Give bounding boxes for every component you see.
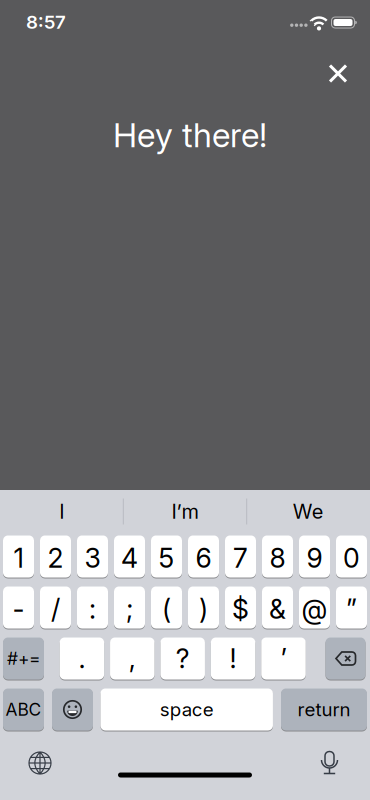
button[interactable]: . [60, 637, 104, 680]
staticText: space [160, 698, 214, 720]
staticText: 4 [121, 542, 138, 574]
button[interactable]: 6 [188, 535, 219, 578]
button[interactable]: #+= [3, 637, 44, 680]
button[interactable]: ABC [3, 688, 44, 731]
button[interactable]: 5 [151, 535, 182, 578]
button[interactable]: ; [114, 586, 145, 629]
button[interactable]: 9 [299, 535, 330, 578]
button[interactable]: I [1, 490, 123, 533]
button[interactable]: $ [225, 586, 256, 629]
staticText: ( [162, 593, 171, 625]
staticText: ? [176, 643, 190, 674]
button[interactable]: ” [336, 586, 367, 629]
staticText: ” [346, 593, 357, 625]
staticText: ’ [280, 643, 286, 674]
staticText: 6 [195, 542, 211, 574]
button[interactable]: - [3, 586, 34, 629]
staticText: & [269, 593, 286, 625]
staticText: / [51, 593, 60, 625]
staticText: 9 [306, 542, 322, 574]
button[interactable]: ? [160, 637, 205, 680]
staticText: ; [126, 593, 133, 625]
staticText: - [12, 593, 24, 625]
staticText: Hey there! [113, 115, 267, 155]
button[interactable]: ’ [261, 637, 306, 680]
button[interactable]: Next keyboard [18, 741, 62, 785]
button[interactable]: 7 [225, 535, 256, 578]
button[interactable]: ) [188, 586, 219, 629]
button[interactable]: @ [299, 586, 330, 629]
staticText: 2 [47, 542, 63, 574]
staticText: 1 [13, 542, 23, 574]
button[interactable]: 3 [77, 535, 108, 578]
staticText: 3 [84, 542, 100, 574]
staticText: We [293, 500, 324, 523]
button[interactable]: 2 [40, 535, 71, 578]
staticText: : [89, 593, 96, 625]
button[interactable]: return [281, 688, 367, 731]
button[interactable]: 8 [262, 535, 293, 578]
staticText: , [129, 643, 136, 674]
staticText: @ [301, 593, 327, 625]
staticText: ABC [5, 699, 41, 720]
staticText: ! [230, 643, 237, 674]
staticText: I’m [171, 500, 198, 523]
button[interactable]: & [262, 586, 293, 629]
button[interactable]: Emoji [52, 688, 93, 731]
staticText: I [59, 500, 64, 523]
staticText: $ [232, 593, 249, 625]
staticText: 8:57 [26, 11, 66, 33]
staticText: ) [199, 593, 208, 625]
button[interactable]: Delete [325, 637, 365, 680]
button[interactable]: space [100, 688, 273, 731]
staticText: 8 [269, 542, 285, 574]
button[interactable]: Close [316, 51, 360, 95]
button[interactable]: ( [151, 586, 182, 629]
button[interactable]: ! [211, 637, 255, 680]
button[interactable]: 1 [3, 535, 34, 578]
button[interactable]: I’m [124, 490, 246, 533]
button[interactable]: 4 [114, 535, 145, 578]
button[interactable]: Dictation [307, 741, 351, 785]
staticText: 5 [158, 542, 174, 574]
button[interactable]: : [77, 586, 108, 629]
button[interactable]: / [40, 586, 71, 629]
staticText: 0 [343, 542, 360, 574]
staticText: #+= [7, 648, 40, 669]
staticText: . [78, 643, 85, 674]
button[interactable]: , [110, 637, 155, 680]
staticText: 7 [233, 542, 248, 574]
button[interactable]: We [247, 490, 369, 533]
staticText: return [297, 698, 350, 720]
button[interactable]: 0 [336, 535, 367, 578]
